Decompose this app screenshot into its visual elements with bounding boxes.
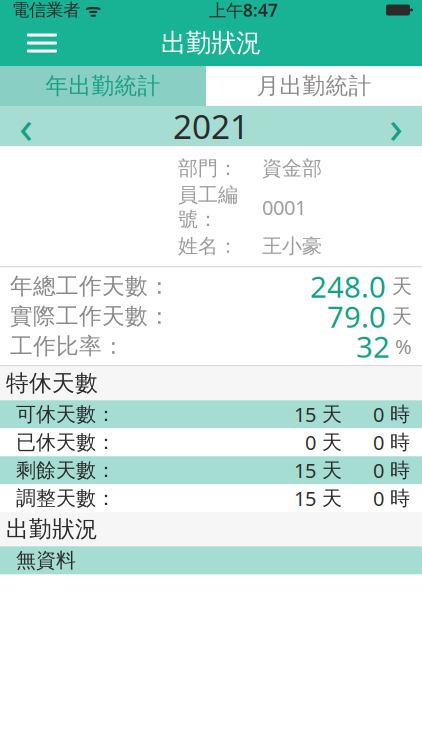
staticText: 年總工作天數： (10, 272, 171, 300)
staticText: › (389, 96, 403, 156)
staticText: 2021 (173, 104, 249, 148)
button[interactable]: 年出勤統計 (0, 66, 206, 106)
staticText: 15 (294, 401, 316, 428)
staticText: 天 (316, 486, 342, 511)
staticText: 出勤狀況 (6, 515, 98, 543)
staticText: 電信業者 (12, 0, 80, 21)
staticText: 時 (384, 402, 410, 427)
button[interactable]: 下一年 (370, 106, 422, 146)
staticText: 姓名： (178, 234, 238, 258)
staticText: 0 (373, 429, 384, 456)
staticText: 天 (316, 430, 342, 455)
staticText: 時 (384, 430, 410, 455)
staticText: 年出勤統計 (45, 72, 160, 100)
staticText: 天 (386, 274, 412, 299)
staticText: 時 (384, 458, 410, 483)
staticText: 32 (356, 327, 390, 366)
staticText: 調整天數： (16, 486, 116, 511)
staticText: 王小豪 (262, 234, 322, 258)
staticText: 已休天數： (16, 430, 116, 455)
staticText: ‹ (19, 96, 33, 156)
staticText: 0 (373, 401, 384, 428)
staticText: 上午8:47 (209, 0, 278, 21)
staticText: 無資料 (16, 548, 76, 573)
staticText: 員工編號： (178, 183, 238, 232)
staticText: 0 (305, 429, 316, 456)
staticText: 特休天數 (6, 369, 98, 397)
staticText: 248.0 (310, 267, 386, 306)
staticText: 0 (373, 485, 384, 512)
staticText: 15 (294, 457, 316, 484)
staticText: 剩餘天數： (16, 458, 116, 483)
staticText: 0 (373, 457, 384, 484)
staticText: 資金部 (262, 156, 322, 181)
staticText: 天 (316, 458, 342, 483)
button[interactable]: 月出勤統計 (206, 66, 422, 106)
staticText: 時 (384, 486, 410, 511)
staticText: ᯤ (80, 0, 101, 21)
staticText: 部門： (178, 156, 238, 181)
staticText: 15 (294, 485, 316, 512)
button[interactable]: 選單 (14, 20, 70, 66)
staticText: % (390, 333, 412, 360)
staticText: 天 (386, 304, 412, 329)
button[interactable]: 上一年 (0, 106, 52, 146)
staticText: 天 (316, 402, 342, 427)
staticText: 月出勤統計 (256, 72, 371, 100)
staticText: 出勤狀況 (161, 27, 261, 58)
staticText: 可休天數： (16, 402, 116, 427)
staticText: 實際工作天數： (10, 302, 171, 330)
staticText: 0001 (262, 194, 306, 220)
staticText: 工作比率： (10, 332, 125, 360)
staticText: 79.0 (327, 297, 386, 336)
